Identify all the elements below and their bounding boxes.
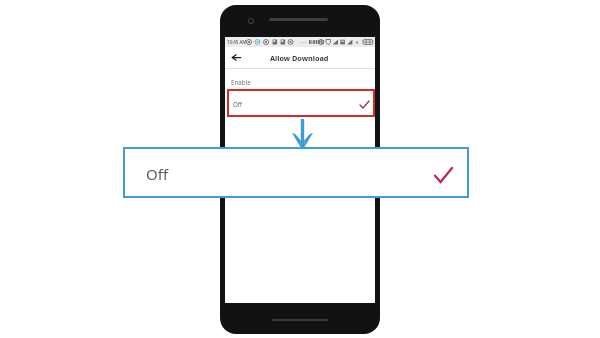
staticText: Off xyxy=(233,100,243,108)
button[interactable]: Off xyxy=(227,89,375,117)
button[interactable]: Off, selected xyxy=(123,147,469,198)
staticText: Off xyxy=(146,164,169,184)
staticText: Allow Download xyxy=(270,53,329,63)
staticText: 10:45 AM xyxy=(227,39,247,45)
button[interactable]: Back xyxy=(231,52,242,63)
staticText: Enable xyxy=(231,78,251,86)
